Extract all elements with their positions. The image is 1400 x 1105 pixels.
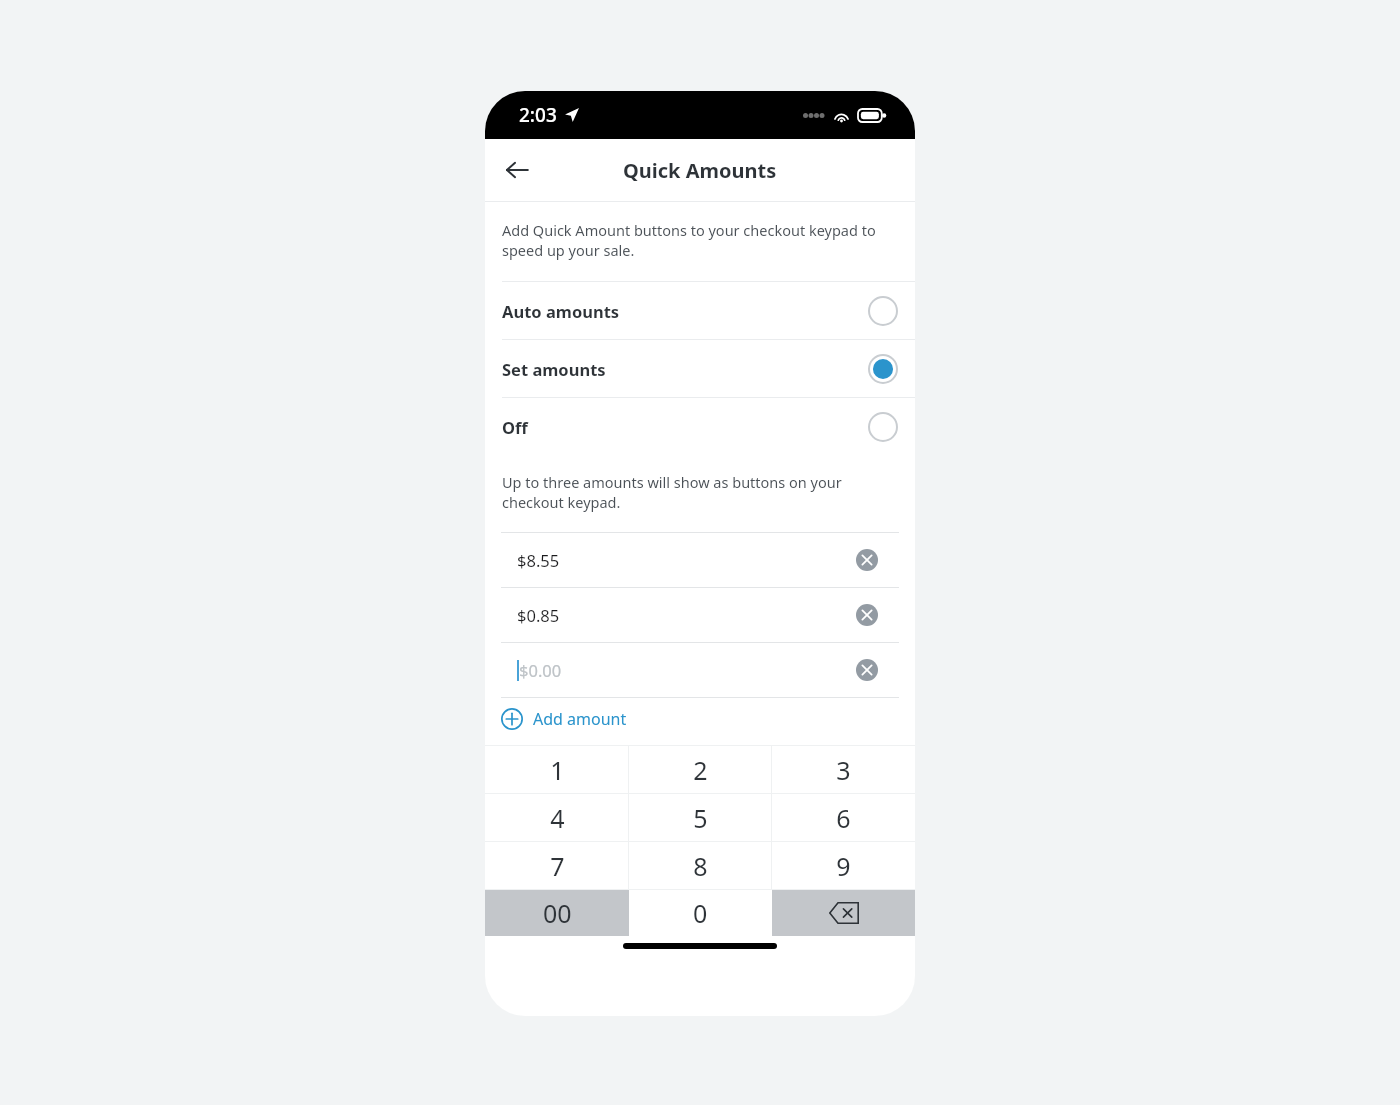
staticText: 9 [836,849,851,883]
button[interactable]: $0.00 [501,643,899,697]
button[interactable]: 3 [772,746,915,793]
staticText: 6 [836,801,851,835]
staticText: 2:03 [519,102,557,128]
staticText: Add Quick Amount buttons to your checkou… [502,220,898,260]
staticText: $0.85 [517,604,849,626]
button[interactable]: $8.55 [501,533,899,587]
button[interactable]: 7 [485,842,629,889]
staticText: 5 [693,801,708,835]
button[interactable]: 8 [629,842,772,889]
staticText: 00 [543,896,572,930]
staticText: Auto amounts [502,300,868,322]
staticText: Set amounts [502,358,868,380]
button[interactable]: Clear amount [849,652,885,688]
button[interactable]: 2 [629,746,772,793]
staticText: 8 [693,849,708,883]
button[interactable]: $0.85 [501,588,899,642]
button[interactable]: 5 [629,794,772,841]
button[interactable]: Off [485,397,915,455]
button[interactable]: Backspace [772,890,915,936]
staticText: 3 [836,753,851,787]
staticText: Off [502,416,868,438]
button[interactable]: 6 [772,794,915,841]
button[interactable]: 4 [485,794,629,841]
staticText: 4 [550,801,565,835]
button[interactable]: 1 [485,746,629,793]
button[interactable]: Set amounts [485,339,915,397]
staticText: Add amount [533,708,627,730]
staticText: 1 [550,753,565,787]
button[interactable]: 9 [772,842,915,889]
staticText: Quick Amounts [623,157,777,184]
staticText: Up to three amounts will show as buttons… [502,472,898,512]
staticText: 0 [693,896,708,930]
button[interactable]: 00 [485,890,629,936]
staticText: 2 [693,753,708,787]
staticText: $8.55 [517,549,849,571]
button[interactable]: Add amount [501,698,627,740]
staticText: $0.00 [519,659,849,681]
button[interactable]: Auto amounts [485,281,915,339]
button[interactable]: Clear amount [849,597,885,633]
button[interactable]: Clear amount [849,542,885,578]
button[interactable]: Back [493,146,541,194]
staticText: 7 [550,849,565,883]
button[interactable]: 0 [629,890,772,936]
